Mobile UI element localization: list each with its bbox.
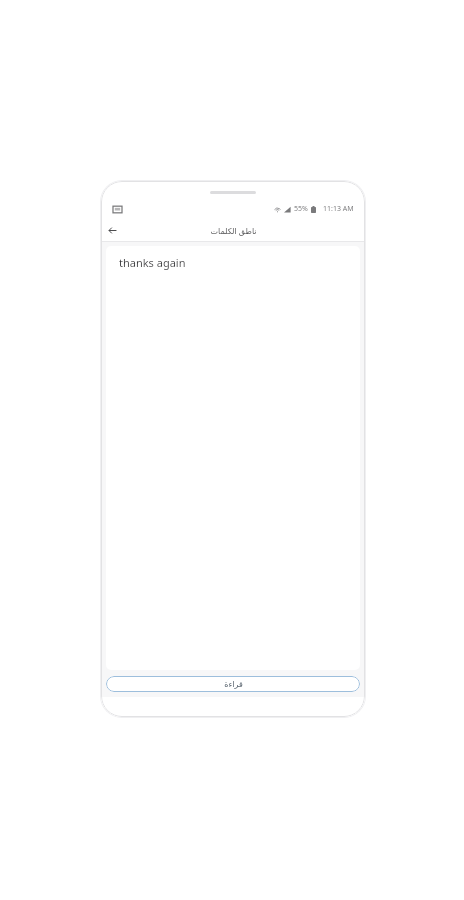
staticText: قراءة [224,680,243,689]
staticText: ناطق الكلمات [210,225,257,236]
button[interactable]: قراءة [106,676,360,692]
button[interactable]: thanks again [106,246,360,670]
staticText: 11:13 AM [323,204,354,214]
button[interactable]: Back [101,219,123,241]
staticText: 55% [294,204,308,214]
staticText: thanks again [119,255,186,270]
